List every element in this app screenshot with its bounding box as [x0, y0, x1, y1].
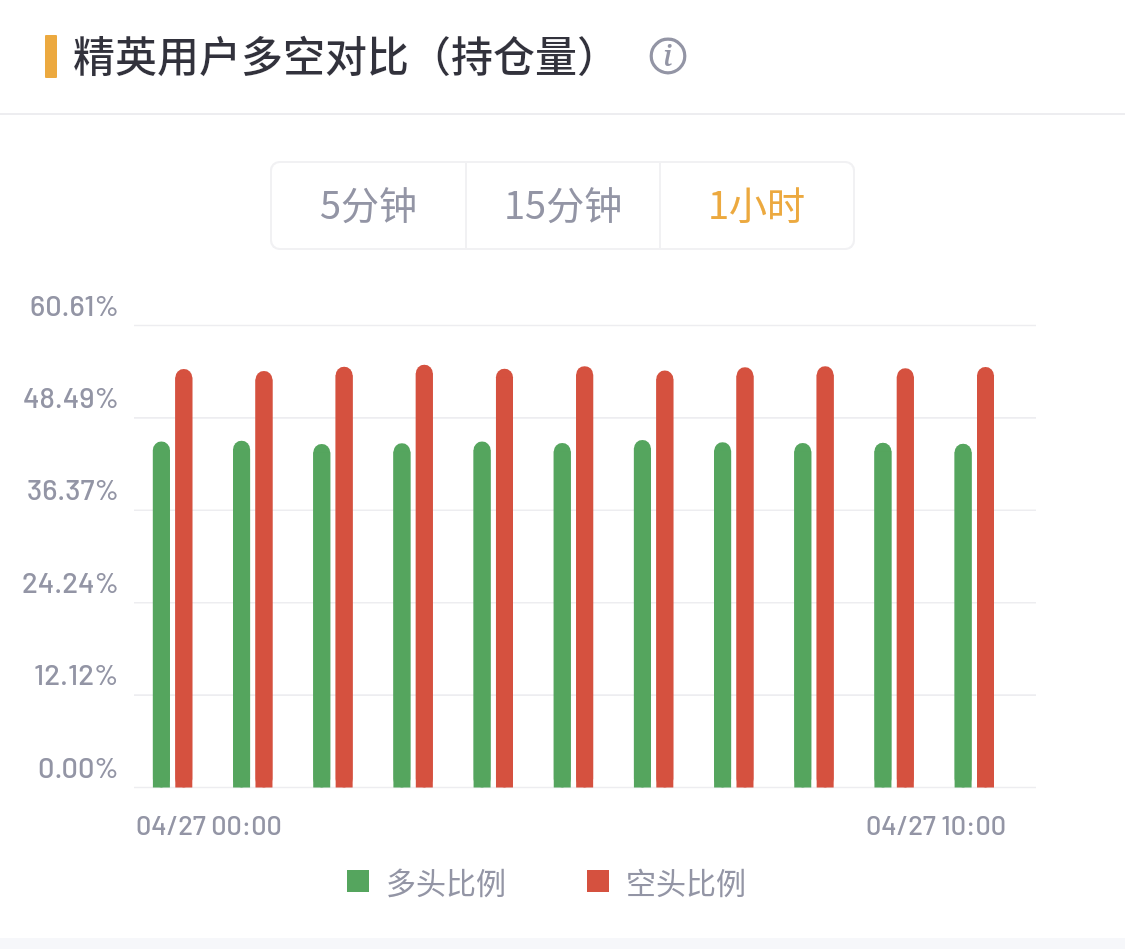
staticText: 1小时 — [708, 175, 806, 230]
button[interactable]: Information about this chart — [645, 33, 690, 78]
staticText: 36.37% — [27, 471, 119, 506]
button[interactable]: 5分钟 — [272, 163, 465, 248]
staticText: 多头比例 — [386, 859, 506, 902]
staticText: 5分钟 — [320, 175, 418, 230]
staticText: 12.12% — [34, 656, 119, 691]
button[interactable]: 空头比例 — [587, 859, 746, 902]
staticText: 24.24% — [22, 564, 119, 599]
button[interactable]: 15分钟 — [467, 163, 659, 248]
staticText: 04/27 10:00 — [866, 808, 1006, 840]
staticText: 0.00% — [38, 749, 119, 784]
staticText: 60.61% — [30, 287, 119, 322]
staticText: 48.49% — [23, 379, 119, 414]
button[interactable]: 多头比例 — [347, 859, 506, 902]
button[interactable]: 1小时 — [661, 163, 853, 248]
staticText: 精英用户多空对比（持仓量） — [73, 23, 620, 84]
staticText: 15分钟 — [504, 175, 623, 230]
staticText: 04/27 00:00 — [136, 808, 282, 840]
staticText: 空头比例 — [626, 859, 746, 902]
staticText: i — [663, 35, 673, 74]
